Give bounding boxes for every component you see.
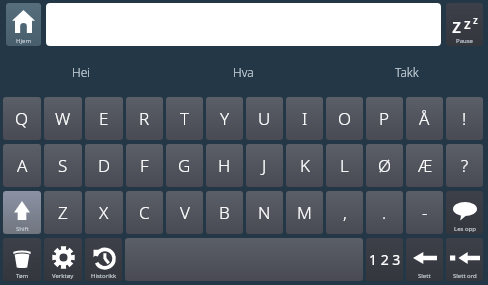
- button[interactable]: B: [206, 191, 243, 234]
- staticText: Shift: [16, 225, 29, 233]
- staticText: R: [139, 107, 150, 130]
- button[interactable]: ,: [326, 191, 363, 234]
- button[interactable]: Y: [206, 97, 243, 140]
- staticText: T: [180, 107, 190, 130]
- staticText: E: [99, 107, 109, 130]
- button[interactable]: Takk: [325, 46, 488, 97]
- staticText: C: [139, 201, 150, 224]
- button[interactable]: M: [286, 191, 323, 234]
- staticText: H: [218, 154, 231, 177]
- staticText: Historikk: [91, 272, 117, 280]
- staticText: z: [452, 13, 462, 33]
- button[interactable]: Hei: [0, 46, 162, 97]
- staticText: Takk: [395, 64, 419, 80]
- staticText: U: [258, 107, 271, 130]
- button[interactable]: L: [326, 144, 363, 187]
- button[interactable]: Æ: [406, 144, 443, 187]
- staticText: K: [300, 154, 310, 177]
- button[interactable]: Shift: [3, 191, 41, 234]
- staticText: W: [55, 107, 71, 130]
- button[interactable]: A: [3, 144, 41, 187]
- button[interactable]: J: [246, 144, 283, 187]
- button[interactable]: R: [126, 97, 163, 140]
- staticText: P: [379, 107, 390, 130]
- staticText: I: [302, 107, 308, 130]
- staticText: F: [140, 154, 149, 177]
- button[interactable]: E: [85, 97, 123, 140]
- staticText: V: [180, 201, 190, 224]
- staticText: ,: [343, 201, 347, 224]
- button[interactable]: V: [166, 191, 203, 234]
- button[interactable]: Tøm: [3, 238, 41, 281]
- staticText: .: [382, 201, 387, 224]
- button[interactable]: Å: [406, 97, 443, 140]
- button[interactable]: .: [366, 191, 403, 234]
- staticText: O: [338, 107, 352, 130]
- button[interactable]: X: [85, 191, 123, 234]
- button[interactable]: Z: [44, 191, 82, 234]
- staticText: J: [262, 154, 267, 177]
- staticText: -: [422, 201, 428, 224]
- staticText: A: [17, 154, 28, 177]
- button[interactable]: T: [166, 97, 203, 140]
- button[interactable]: Hva: [162, 46, 325, 97]
- button[interactable]: N: [246, 191, 283, 234]
- button[interactable]: Slett ord: [446, 238, 483, 281]
- button[interactable]: Slett: [406, 238, 443, 281]
- staticText: N: [258, 201, 271, 224]
- staticText: !: [462, 107, 467, 130]
- staticText: Hjem: [16, 37, 31, 45]
- staticText: Hei: [72, 64, 91, 80]
- button[interactable]: Mellomrom: [125, 238, 363, 281]
- staticText: Verktøy: [52, 272, 74, 280]
- staticText: S: [58, 154, 68, 177]
- button[interactable]: O: [326, 97, 363, 140]
- button[interactable]: F: [126, 144, 163, 187]
- staticText: Tøm: [16, 272, 29, 280]
- staticText: Y: [220, 107, 230, 130]
- button[interactable]: Pause: [446, 3, 483, 46]
- staticText: 1 2 3: [369, 250, 401, 269]
- button[interactable]: 1 2 3: [366, 238, 403, 281]
- button[interactable]: K: [286, 144, 323, 187]
- staticText: Les opp: [454, 225, 476, 233]
- button[interactable]: ?: [446, 144, 483, 187]
- staticText: L: [340, 154, 349, 177]
- button[interactable]: G: [166, 144, 203, 187]
- button[interactable]: Verktøy: [44, 238, 82, 281]
- staticText: Hva: [233, 64, 254, 80]
- button[interactable]: Q: [3, 97, 41, 140]
- button[interactable]: W: [44, 97, 82, 140]
- button[interactable]: P: [366, 97, 403, 140]
- staticText: Q: [15, 107, 29, 130]
- button[interactable]: [46, 3, 441, 46]
- button[interactable]: S: [44, 144, 82, 187]
- staticText: ?: [461, 154, 469, 177]
- staticText: z: [464, 14, 471, 33]
- button[interactable]: I: [286, 97, 323, 140]
- staticText: Slett ord: [453, 272, 477, 280]
- staticText: M: [297, 201, 312, 224]
- button[interactable]: C: [126, 191, 163, 234]
- staticText: Pause: [456, 37, 473, 45]
- staticText: B: [219, 201, 230, 224]
- staticText: Z: [58, 201, 68, 224]
- staticText: z: [473, 13, 478, 27]
- button[interactable]: !: [446, 97, 483, 140]
- button[interactable]: Les opp: [446, 191, 483, 234]
- button[interactable]: U: [246, 97, 283, 140]
- staticText: Ø: [378, 154, 392, 177]
- staticText: D: [98, 154, 111, 177]
- staticText: Slett: [418, 272, 431, 280]
- staticText: Å: [419, 107, 430, 130]
- staticText: X: [99, 201, 109, 224]
- staticText: Æ: [418, 154, 432, 177]
- button[interactable]: Ø: [366, 144, 403, 187]
- button[interactable]: Historikk: [85, 238, 122, 281]
- button[interactable]: -: [406, 191, 443, 234]
- button[interactable]: H: [206, 144, 243, 187]
- button[interactable]: Hjem: [6, 3, 41, 46]
- staticText: G: [178, 154, 191, 177]
- button[interactable]: D: [85, 144, 123, 187]
